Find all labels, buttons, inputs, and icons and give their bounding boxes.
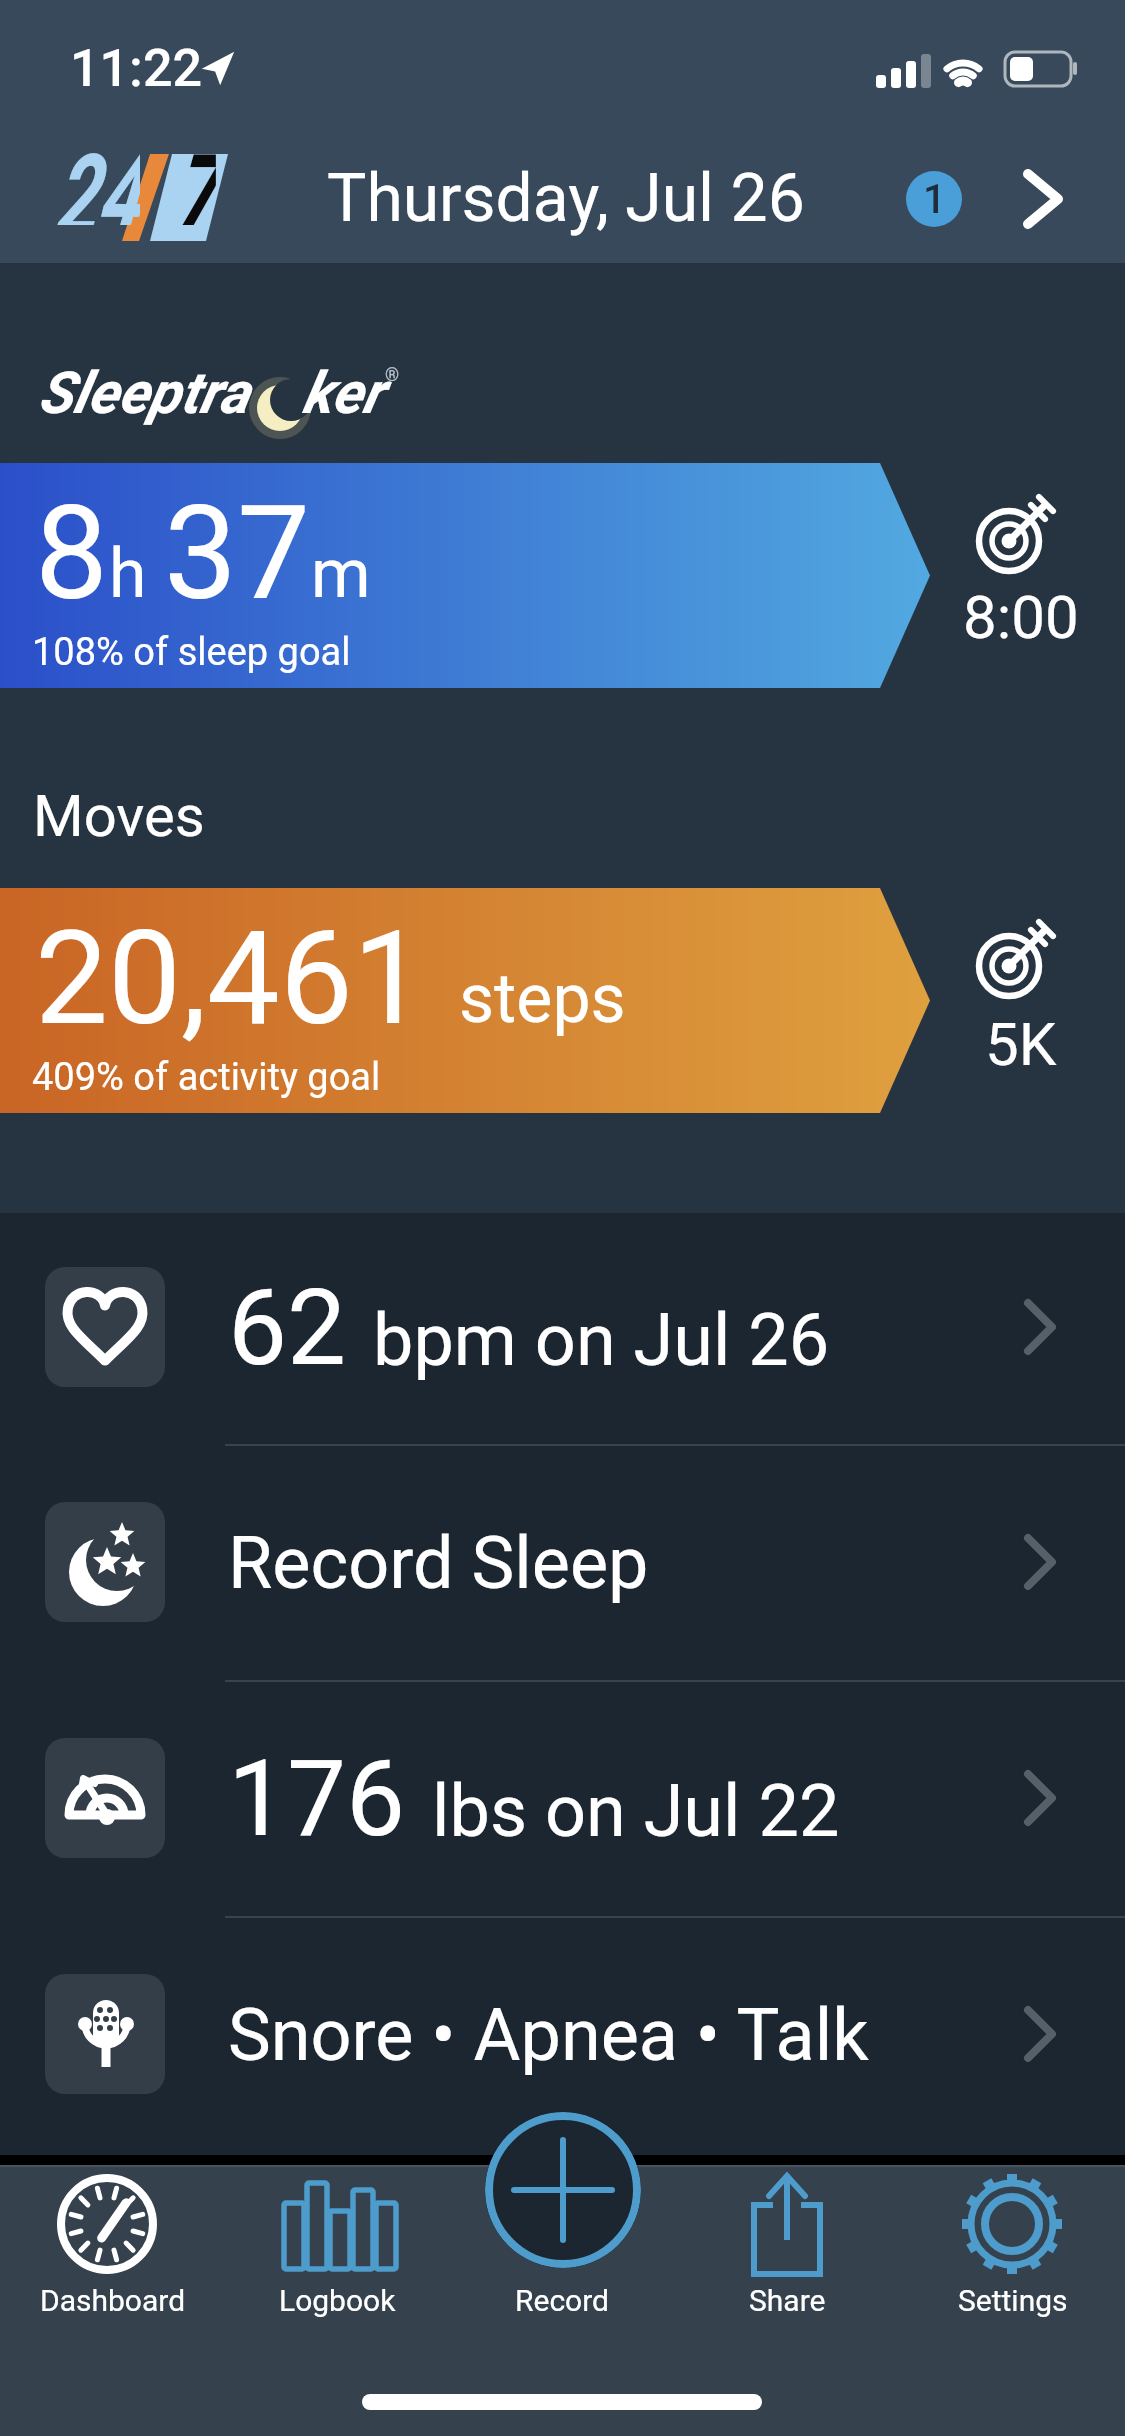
staticText: Snore • Apnea • Talk — [228, 1993, 869, 2077]
staticText: bpm on Jul 26 — [373, 1298, 830, 1382]
staticText: 37 — [164, 477, 311, 629]
staticText: lbs on Jul 22 — [432, 1769, 840, 1853]
staticText: h — [109, 534, 164, 614]
button[interactable] — [0, 1242, 1125, 1412]
staticText: 5K — [985, 1009, 1057, 1079]
button[interactable] — [0, 463, 930, 688]
staticText: Settings — [958, 2283, 1068, 2318]
staticText: m — [311, 534, 371, 614]
staticText: 8 — [35, 477, 109, 629]
button[interactable] — [485, 2112, 641, 2268]
staticText: 24 — [55, 130, 140, 225]
staticText: 8:00 — [963, 582, 1079, 652]
staticText: 176 — [228, 1738, 432, 1861]
button[interactable] — [0, 888, 930, 1113]
staticText: Share — [749, 2283, 826, 2318]
button[interactable] — [450, 2165, 675, 2330]
staticText: 409% of activity goal — [32, 1055, 381, 1100]
button[interactable] — [0, 1713, 1125, 1883]
button[interactable] — [0, 1949, 1125, 2119]
staticText: Thursday, Jul 26 — [327, 160, 805, 237]
staticText: ® — [385, 364, 400, 385]
staticText: 108% of sleep goal — [32, 630, 351, 675]
staticText: steps — [459, 959, 626, 1039]
staticText: Moves — [33, 782, 205, 850]
staticText: 11:22 — [70, 38, 203, 99]
button[interactable] — [0, 2165, 225, 2330]
staticText: Record — [515, 2283, 610, 2318]
staticText: Logbook — [279, 2283, 396, 2318]
button[interactable]: Sleeptra — [30, 350, 380, 450]
button[interactable]: 1 — [906, 171, 962, 227]
staticText: 62 — [228, 1267, 373, 1390]
button[interactable] — [1020, 168, 1066, 230]
staticText: 20,461 — [35, 902, 459, 1054]
staticText: Dashboard — [40, 2283, 186, 2318]
staticText: 7 — [173, 130, 216, 225]
staticText: Record Sleep — [228, 1521, 649, 1605]
staticText: Sleeptra — [38, 359, 249, 427]
button[interactable] — [900, 2165, 1125, 2330]
button[interactable] — [225, 2165, 450, 2330]
button[interactable] — [0, 1477, 1125, 1647]
staticText: 1 — [923, 176, 946, 223]
button[interactable]: 24 — [55, 150, 230, 245]
button[interactable] — [675, 2165, 900, 2330]
staticText: ker — [302, 359, 383, 427]
